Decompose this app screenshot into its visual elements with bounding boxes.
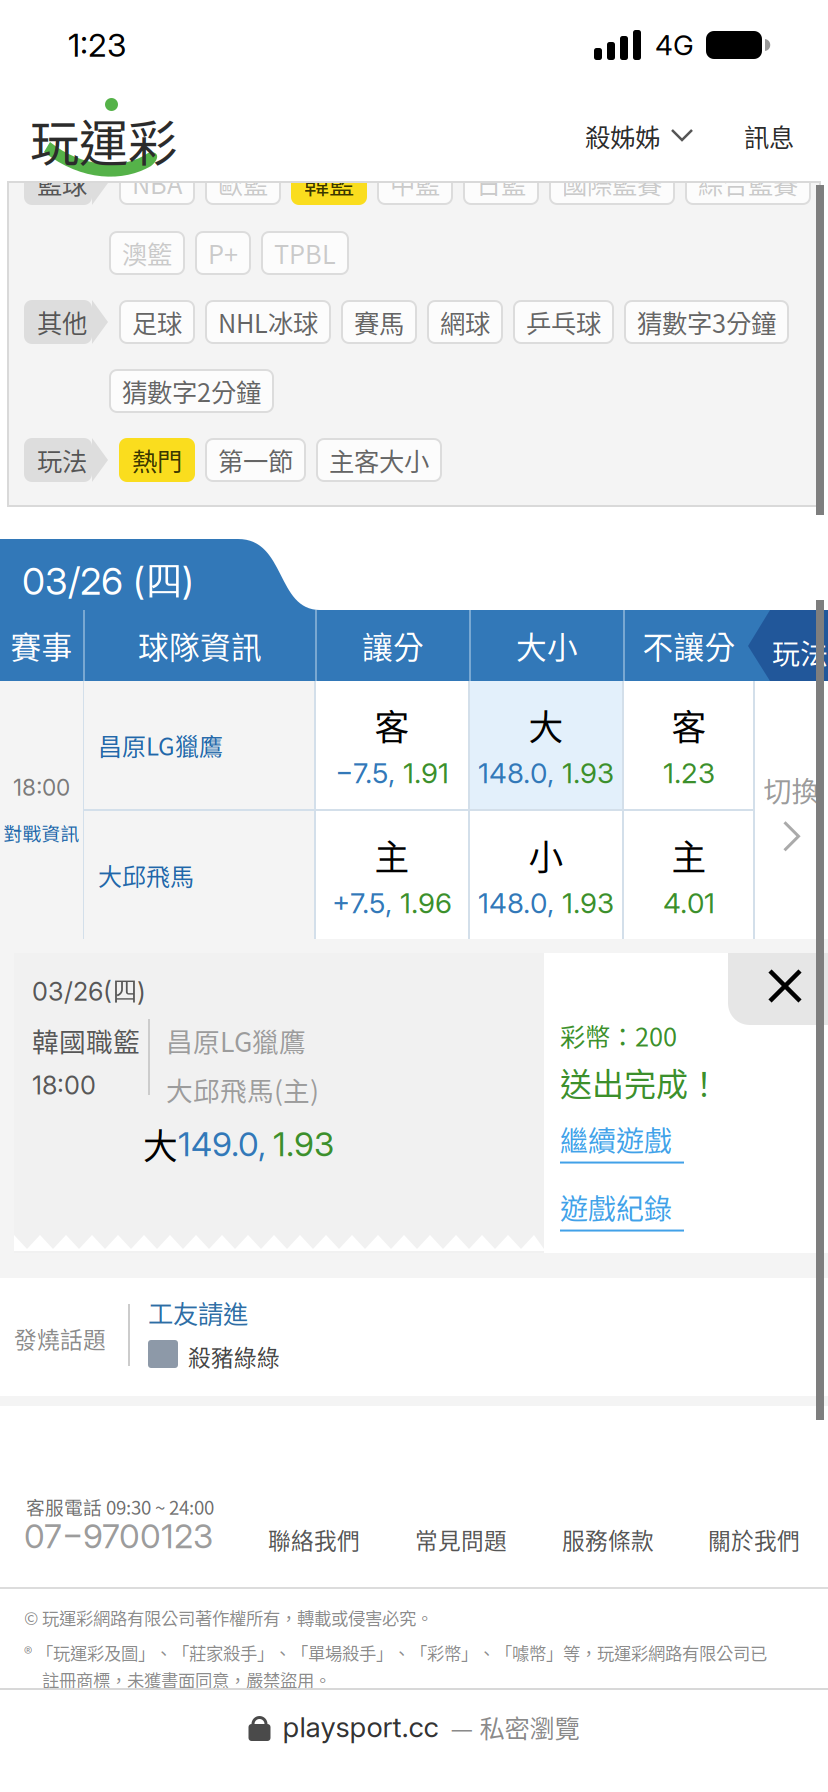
button[interactable]: P+ <box>196 232 250 274</box>
staticText: 4G <box>655 28 694 62</box>
staticText: 1.93 <box>273 1124 334 1164</box>
staticText: 註冊商標，未獲書面同意，嚴禁盜用。 <box>42 1667 331 1692</box>
button[interactable]: 賽馬 <box>342 301 416 343</box>
button[interactable]: 猜數字3分鐘 <box>625 301 788 343</box>
button[interactable]: TPBL <box>262 232 348 274</box>
button[interactable]: 昌原LG獵鷹 <box>84 681 314 809</box>
staticText: 大邱飛馬(主) <box>166 1070 319 1109</box>
staticText: +7.5, <box>332 886 392 920</box>
staticText: 148.0, <box>478 886 554 920</box>
button[interactable]: 訊息 <box>744 98 794 174</box>
button[interactable]: 國際籃賽 <box>550 162 674 204</box>
button[interactable]: 澳籃 <box>110 232 184 274</box>
staticText: 客 <box>374 700 409 750</box>
staticText: 服務條款 <box>562 1523 654 1556</box>
staticText: 不讓分 <box>642 623 735 668</box>
button[interactable]: 籃球 <box>24 161 108 205</box>
button[interactable]: NHL冰球 <box>206 301 330 343</box>
button[interactable]: 主 <box>316 811 468 939</box>
button[interactable]: 工友請進 <box>148 1294 248 1331</box>
staticText: 1.93 <box>562 756 614 790</box>
staticText: 大邱飛馬 <box>98 858 194 892</box>
staticText: 客服電話 09:30 ~ 24:00 <box>26 1493 214 1520</box>
staticText: 日籃 <box>476 165 526 201</box>
staticText: 網球 <box>440 304 490 340</box>
staticText: 籃球 <box>37 165 87 201</box>
button[interactable]: 切換 <box>755 681 828 939</box>
button[interactable]: 足球 <box>120 301 194 343</box>
staticText: 1.93 <box>562 886 614 920</box>
staticText: −7.5, <box>335 756 395 790</box>
staticText: 18:00 <box>13 774 70 801</box>
button[interactable]: 其他 <box>24 300 108 344</box>
staticText: 關於我們 <box>708 1523 800 1556</box>
staticText: 玩法 <box>37 442 87 478</box>
button[interactable]: 主 <box>624 811 754 939</box>
staticText: 4.01 <box>663 886 715 920</box>
staticText: 小 <box>528 830 563 880</box>
button[interactable]: 常見問題 <box>415 1523 507 1556</box>
staticText: 常見問題 <box>415 1523 507 1556</box>
staticText: 韓籃 <box>304 165 354 201</box>
staticText: ® 「玩運彩及圖」、「莊家殺手」、「單場殺手」、「彩幣」、「噱幣」等，玩運彩網路… <box>24 1640 767 1665</box>
button[interactable]: 日籃 <box>464 162 538 204</box>
staticText: 149.0, <box>178 1124 266 1164</box>
staticText: TPBL <box>274 235 336 271</box>
button[interactable]: 中籃 <box>378 162 452 204</box>
button[interactable]: 玩法 <box>24 438 108 482</box>
button[interactable]: 大邱飛馬 <box>84 811 314 939</box>
button[interactable]: 小 <box>470 811 622 939</box>
staticText: 國際籃賽 <box>562 165 662 201</box>
staticText: 昌原LG獵鷹 <box>166 1021 306 1060</box>
button[interactable]: 關於我們 <box>708 1523 800 1556</box>
button[interactable]: 大 <box>470 681 622 809</box>
staticText: 切換 <box>763 770 819 810</box>
staticText: 工友請進 <box>148 1294 248 1331</box>
staticText: playsport.cc <box>282 1710 438 1744</box>
staticText: 大小 <box>516 623 578 668</box>
staticText: 猜數字3分鐘 <box>637 304 776 340</box>
button[interactable]: 聯絡我們 <box>268 1523 360 1556</box>
staticText: 澳籃 <box>122 235 172 271</box>
staticText: 賽馬 <box>354 304 404 340</box>
button[interactable]: 客 <box>316 681 468 809</box>
staticText: P+ <box>208 235 238 271</box>
staticText: 大 <box>528 700 563 750</box>
button[interactable]: 韓籃 <box>292 162 366 204</box>
staticText: 歐籃 <box>218 165 268 201</box>
staticText: 昌原LG獵鷹 <box>98 728 223 762</box>
staticText: 綜合籃賽 <box>698 165 798 201</box>
button[interactable]: 繼續遊戲 <box>560 1119 684 1163</box>
button[interactable]: 對戰資訊 <box>3 819 79 846</box>
staticText: 03/26(四) <box>32 975 146 1007</box>
button[interactable]: 乒乓球 <box>514 301 613 343</box>
staticText: 第一節 <box>218 442 293 478</box>
button[interactable]: 歐籃 <box>206 162 280 204</box>
staticText: 訊息 <box>744 118 794 154</box>
staticText: 遊戲紀錄 <box>560 1187 672 1227</box>
button[interactable]: 客 <box>624 681 754 809</box>
button[interactable]: 遊戲紀錄 <box>560 1187 684 1231</box>
staticText: 韓國職籃 <box>32 1021 140 1060</box>
staticText: 主 <box>374 830 409 880</box>
staticText: 07−9700123 <box>24 1516 213 1556</box>
staticText: 1.91 <box>403 756 449 790</box>
button[interactable]: 第一節 <box>206 439 305 481</box>
staticText: 主客大小 <box>329 442 429 478</box>
staticText: 繼續遊戲 <box>560 1119 672 1159</box>
button[interactable]: 熱門 <box>120 439 194 481</box>
staticText: 其他 <box>37 304 87 340</box>
staticText: 1:23 <box>68 26 126 64</box>
button[interactable]: 網球 <box>428 301 502 343</box>
button[interactable]: Close <box>728 953 828 1025</box>
button[interactable]: 綜合籃賽 <box>686 162 810 204</box>
staticText: 發燒話題 <box>14 1322 106 1355</box>
button[interactable]: 猜數字2分鐘 <box>110 370 273 412</box>
button[interactable]: 服務條款 <box>562 1523 654 1556</box>
staticText: 中籃 <box>390 165 440 201</box>
staticText: 對戰資訊 <box>3 819 79 846</box>
button[interactable]: 主客大小 <box>317 439 441 481</box>
button[interactable]: NBA <box>120 162 194 204</box>
button[interactable]: 殺姊姊 <box>585 98 692 174</box>
staticText: 熱門 <box>132 442 182 478</box>
